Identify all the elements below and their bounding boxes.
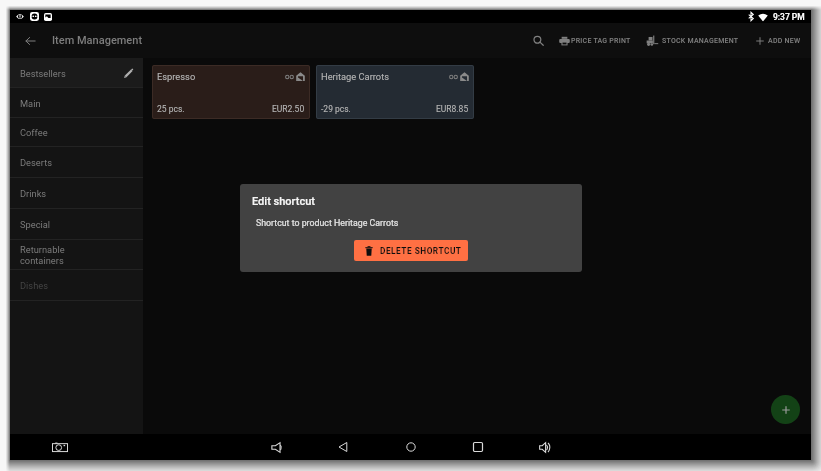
staticText: -29 pcs. xyxy=(321,104,351,114)
button[interactable]: DELETE SHORTCUT xyxy=(354,240,468,261)
button[interactable]: Back xyxy=(19,30,41,52)
staticText: Returnable containers xyxy=(20,244,134,266)
button[interactable]: Espresso xyxy=(152,65,310,119)
staticText: 9:37 PM xyxy=(773,12,805,22)
button[interactable]: Coffee xyxy=(10,118,143,147)
staticText: STOCK MANAGEMENT xyxy=(662,37,739,45)
button[interactable]: Back xyxy=(332,436,354,458)
button[interactable]: Recents xyxy=(467,436,489,458)
button[interactable]: Search xyxy=(528,31,548,51)
staticText: Edit shortcut xyxy=(252,195,315,208)
staticText: Dishes xyxy=(20,280,134,291)
button[interactable]: Main xyxy=(10,88,143,118)
button[interactable]: Home xyxy=(400,436,422,458)
button[interactable]: Heritage Carrots xyxy=(316,65,474,119)
button[interactable]: Drinks xyxy=(10,178,143,209)
staticText: Main xyxy=(20,98,134,109)
button[interactable]: Volume up xyxy=(534,436,556,458)
button[interactable]: Volume down xyxy=(265,436,287,458)
button[interactable]: Returnable containers xyxy=(10,240,143,270)
staticText: Heritage Carrots xyxy=(321,71,449,82)
staticText: Bestsellers xyxy=(20,68,123,79)
staticText: Shortcut to product Heritage Carrots xyxy=(256,218,399,228)
staticText: Drinks xyxy=(20,188,134,199)
button[interactable]: Bestsellers xyxy=(10,58,143,88)
staticText: ADD NEW xyxy=(768,37,801,45)
button[interactable]: Screenshot xyxy=(49,436,71,458)
staticText: Espresso xyxy=(157,71,285,82)
staticText: EUR2.50 xyxy=(272,104,305,114)
staticText: Item Management xyxy=(52,34,143,47)
button[interactable]: Deserts xyxy=(10,147,143,178)
staticText: 25 pcs. xyxy=(157,104,185,114)
staticText: EUR8.85 xyxy=(436,104,469,114)
button[interactable]: PRICE TAG PRINT xyxy=(559,32,631,50)
staticText: Deserts xyxy=(20,157,134,168)
button[interactable]: STOCK MANAGEMENT xyxy=(646,31,739,50)
button[interactable]: Dishes xyxy=(10,270,143,301)
button[interactable]: Special xyxy=(10,209,143,240)
button[interactable]: ADD NEW xyxy=(756,33,801,49)
staticText: Special xyxy=(20,219,134,230)
staticText: Coffee xyxy=(20,127,134,138)
button[interactable]: Add xyxy=(771,395,800,424)
staticText: PRICE TAG PRINT xyxy=(571,37,631,45)
staticText: DELETE SHORTCUT xyxy=(380,246,462,256)
